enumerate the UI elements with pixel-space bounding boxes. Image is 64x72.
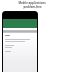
staticText: problem-free <box>23 5 42 9</box>
button[interactable] <box>3 30 37 33</box>
staticText: Mobile applications <box>18 1 46 5</box>
